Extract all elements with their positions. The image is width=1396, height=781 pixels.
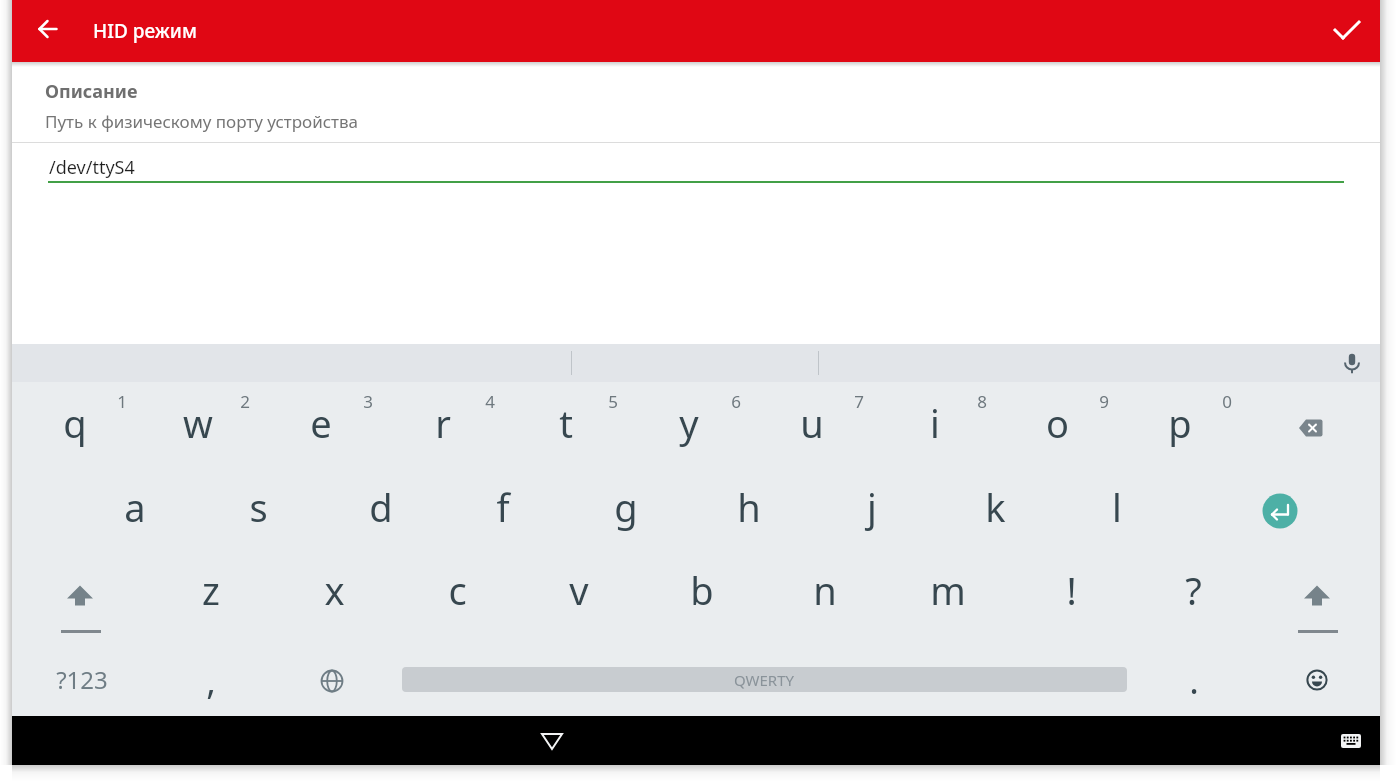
staticText: i (930, 397, 940, 449)
staticText: 7 (854, 390, 864, 413)
button[interactable]: m (888, 549, 1008, 631)
staticText: /dev/ttyS4 (49, 155, 135, 180)
button[interactable]: t (506, 382, 626, 464)
button[interactable]: a (75, 466, 195, 548)
staticText: HID режим (93, 18, 197, 44)
staticText: QWERTY (734, 670, 795, 690)
staticText: . (1189, 656, 1199, 705)
staticText: h (737, 481, 761, 533)
staticText: f (496, 481, 510, 533)
button[interactable]: . (1134, 639, 1254, 721)
button[interactable]: y (629, 382, 749, 464)
staticText: z (202, 564, 220, 616)
button[interactable] (1257, 550, 1377, 632)
staticText: w (183, 397, 213, 449)
button[interactable]: ? (1133, 549, 1253, 631)
button[interactable]: l (1057, 466, 1177, 548)
staticText: d (369, 481, 393, 533)
button[interactable]: n (765, 549, 885, 631)
staticText: u (800, 397, 824, 449)
button[interactable] (272, 640, 392, 722)
staticText: a (124, 481, 146, 533)
button[interactable]: u (752, 382, 872, 464)
button[interactable] (1328, 344, 1376, 382)
staticText: q (63, 397, 87, 449)
button[interactable]: /dev/ttyS4 (48, 148, 1344, 184)
button[interactable]: ?123 (22, 638, 142, 720)
button[interactable] (1220, 470, 1340, 552)
staticText: 5 (608, 390, 618, 413)
button[interactable] (20, 550, 140, 632)
staticText: ?123 (56, 663, 108, 696)
button[interactable] (24, 5, 72, 53)
button[interactable]: v (519, 549, 639, 631)
staticText: b (690, 564, 714, 616)
staticText: r (435, 397, 451, 449)
button[interactable]: QWERTY (402, 667, 1127, 692)
staticText: Путь к физическому порту устройства (45, 110, 359, 133)
button[interactable] (516, 716, 588, 765)
staticText: g (614, 481, 638, 533)
staticText: 9 (1099, 390, 1109, 413)
button[interactable] (1327, 716, 1375, 765)
staticText: k (985, 481, 1006, 533)
staticText: 1 (117, 390, 127, 413)
button[interactable]: ! (1011, 549, 1131, 631)
button[interactable]: o (997, 382, 1117, 464)
staticText: o (1046, 397, 1069, 449)
staticText: Описание (45, 79, 138, 104)
staticText: y (679, 397, 699, 449)
staticText: 2 (240, 390, 250, 413)
button[interactable]: , (151, 639, 271, 721)
button[interactable]: s (198, 466, 318, 548)
button[interactable] (1323, 5, 1371, 53)
button[interactable]: p (1120, 382, 1240, 464)
button[interactable]: r (383, 382, 503, 464)
button[interactable]: i (875, 382, 995, 464)
staticText: v (569, 564, 589, 616)
button[interactable]: g (566, 466, 686, 548)
staticText: p (1168, 397, 1192, 449)
button[interactable]: q (15, 382, 135, 464)
button[interactable]: j (812, 466, 932, 548)
staticText: n (813, 564, 837, 616)
button[interactable] (1250, 387, 1370, 469)
button[interactable]: x (274, 549, 394, 631)
button[interactable]: e (261, 382, 381, 464)
staticText: ! (1066, 564, 1077, 616)
staticText: c (448, 564, 467, 616)
button[interactable]: z (151, 549, 271, 631)
staticText: e (310, 397, 332, 449)
staticText: x (324, 564, 345, 616)
staticText: 6 (731, 390, 741, 413)
staticText: s (249, 481, 268, 533)
staticText: m (930, 564, 966, 616)
staticText: l (1112, 481, 1122, 533)
staticText: 8 (977, 390, 987, 413)
staticText: , (206, 656, 216, 705)
button[interactable]: w (138, 382, 258, 464)
staticText: j (867, 481, 877, 533)
staticText: t (559, 397, 573, 449)
button[interactable]: c (397, 549, 517, 631)
button[interactable]: f (443, 466, 563, 548)
button[interactable] (1257, 639, 1377, 721)
staticText: 3 (363, 390, 373, 413)
button[interactable]: h (689, 466, 809, 548)
staticText: 0 (1222, 390, 1232, 413)
button[interactable]: b (642, 549, 762, 631)
button[interactable]: k (935, 466, 1055, 548)
button[interactable]: d (321, 466, 441, 548)
staticText: 4 (485, 390, 495, 413)
staticText: ? (1185, 564, 1202, 616)
